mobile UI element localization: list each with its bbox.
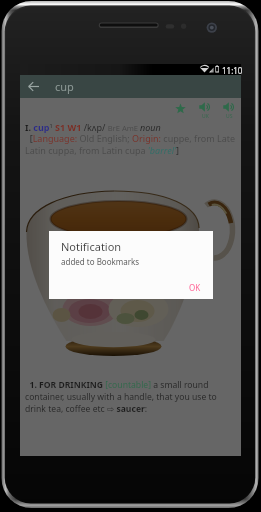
button[interactable]: Play UK pronunciation [194, 102, 216, 120]
staticText: US [226, 113, 233, 120]
staticText: I. cup1 S1 W1 /kʌp/ BrE AmE noun [Langua… [25, 121, 236, 157]
staticText: cup [55, 79, 74, 94]
staticText: Notification [61, 239, 122, 254]
staticText: 1. FOR DRINKING [countable] a small roun… [25, 379, 236, 415]
staticText: 11:10 [222, 65, 243, 76]
staticText: added to Bookmarks [61, 256, 140, 267]
staticText: OK [189, 282, 201, 293]
button[interactable]: Back [20, 75, 47, 98]
button[interactable]: OK [177, 276, 213, 299]
button[interactable]: Play US pronunciation [218, 102, 240, 120]
button[interactable]: Bookmark [169, 97, 191, 119]
staticText: UK [202, 113, 209, 120]
